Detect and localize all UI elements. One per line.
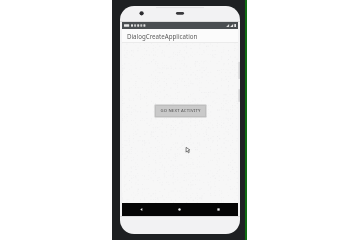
staticText: DialogCreateApplication bbox=[127, 32, 198, 40]
button[interactable]: Recent apps bbox=[199, 203, 238, 216]
staticText: GO NEXT ACTIVITY bbox=[160, 108, 201, 114]
button[interactable]: Home bbox=[160, 203, 199, 216]
button[interactable]: GO NEXT ACTIVITY bbox=[155, 105, 206, 117]
button[interactable]: Back bbox=[122, 203, 160, 216]
